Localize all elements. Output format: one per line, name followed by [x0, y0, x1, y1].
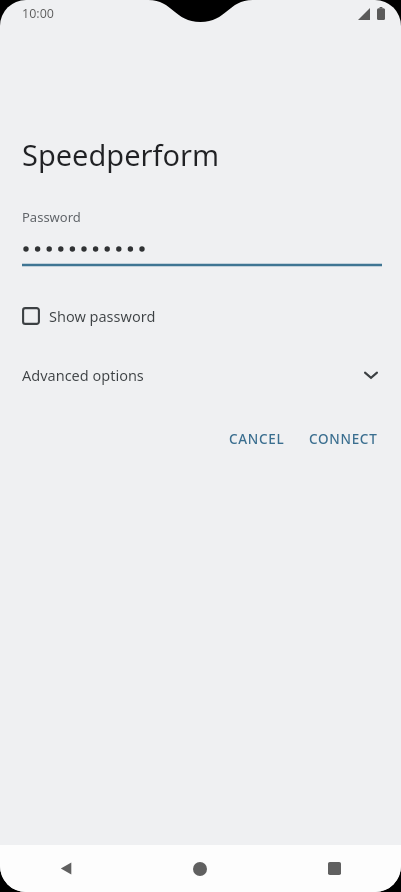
button[interactable]: Back — [0, 845, 133, 892]
button[interactable]: CANCEL — [220, 423, 294, 455]
staticText: Show password — [49, 306, 156, 326]
staticText: Speedperform — [22, 135, 220, 174]
staticText: Password — [22, 208, 81, 226]
staticText: 10:00 — [22, 5, 54, 22]
button[interactable]: CONNECT — [300, 423, 387, 455]
staticText: CANCEL — [229, 430, 285, 448]
button[interactable]: Home — [133, 845, 267, 892]
button[interactable]: Recent apps — [267, 845, 401, 892]
staticText: Advanced options — [22, 365, 144, 385]
button[interactable]: Advanced options — [0, 357, 401, 393]
button[interactable]: Show password — [18, 299, 164, 333]
staticText: CONNECT — [309, 430, 378, 448]
button[interactable] — [22, 240, 382, 268]
